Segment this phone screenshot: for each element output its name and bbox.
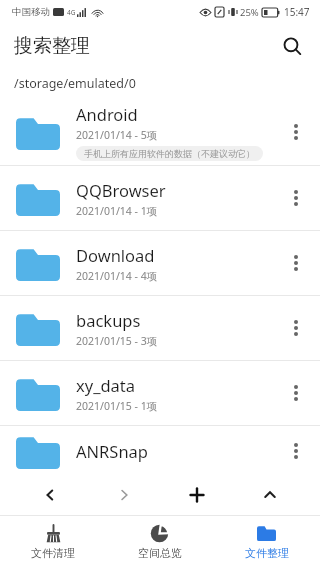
button[interactable]: More options	[276, 243, 316, 283]
staticText: 2021/01/14 - 1项	[76, 204, 158, 218]
staticText: ANRSnap	[76, 440, 149, 462]
staticText: Android	[76, 103, 138, 125]
staticText: backups	[76, 309, 141, 331]
button[interactable]: QQBrowser	[0, 166, 320, 230]
button[interactable]: Collapse	[250, 475, 290, 515]
staticText: 25%	[240, 6, 259, 19]
button[interactable]: Add	[177, 475, 217, 515]
button[interactable]: Android	[0, 98, 320, 165]
staticText: 2021/01/15 - 3项	[76, 334, 158, 348]
staticText: 搜索整理	[14, 34, 90, 58]
button[interactable]: Back	[30, 475, 70, 515]
staticText: /storage/emulated/0	[14, 75, 136, 92]
button[interactable]: Search	[272, 26, 312, 66]
button[interactable]: More options	[276, 431, 316, 471]
staticText: 4G	[67, 8, 76, 17]
staticText: Download	[76, 244, 155, 266]
staticText: 15:47	[284, 5, 310, 19]
button[interactable]: More options	[276, 308, 316, 348]
staticText: 2021/01/14 - 5项	[76, 128, 158, 142]
staticText: 空间总览	[138, 546, 182, 560]
button[interactable]: backups	[0, 296, 320, 360]
staticText: 2021/01/15 - 1项	[76, 399, 158, 413]
button[interactable]: More options	[276, 112, 316, 152]
staticText: xy_data	[76, 374, 136, 396]
button[interactable]: xy_data	[0, 361, 320, 425]
button[interactable]: Forward	[104, 475, 144, 515]
staticText: 2021/01/14 - 4项	[76, 269, 158, 283]
button[interactable]: Download	[0, 231, 320, 295]
staticText: 中国移动	[12, 6, 50, 18]
staticText: QQBrowser	[76, 179, 166, 201]
button[interactable]: 空间总览	[106, 524, 213, 560]
button[interactable]: 文件整理	[213, 524, 320, 560]
button[interactable]: More options	[276, 178, 316, 218]
staticText: 手机上所有应用软件的数据（不建议动它）	[84, 148, 255, 159]
button[interactable]: ANRSnap	[0, 426, 320, 475]
button[interactable]: 文件清理	[0, 524, 106, 560]
staticText: 文件清理	[31, 546, 75, 560]
button[interactable]: More options	[276, 373, 316, 413]
staticText: 文件整理	[245, 546, 289, 560]
